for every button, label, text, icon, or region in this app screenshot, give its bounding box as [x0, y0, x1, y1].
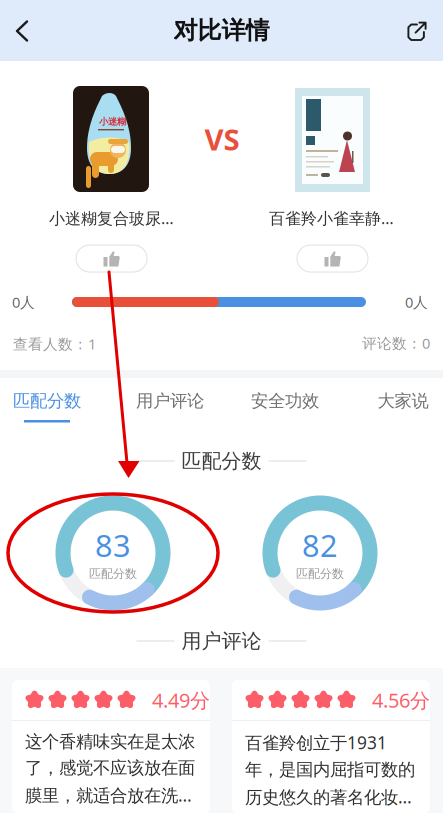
staticText: 4.49分 — [152, 687, 210, 713]
button[interactable]: 安全功效 — [229, 382, 341, 427]
staticText: 匹配分数 — [89, 566, 137, 581]
staticText: 匹配分数 — [181, 449, 261, 473]
staticText: 匹配分数 — [13, 390, 81, 412]
staticText: 0人 — [405, 292, 428, 312]
staticText: 83 — [95, 525, 131, 565]
button[interactable]: Share — [395, 9, 439, 53]
staticText: 小迷糊复合玻尿… — [49, 207, 174, 229]
staticText: 评论数：0 — [362, 333, 430, 353]
staticText: 查看人数：1 — [13, 334, 96, 353]
button[interactable]: Back — [0, 9, 44, 53]
button[interactable]: Like 小迷糊复合玻尿 — [76, 245, 147, 272]
button[interactable]: 4.49分 — [12, 680, 210, 813]
staticText: 4.56分 — [372, 687, 430, 713]
staticText: 用户评论 — [136, 390, 204, 412]
staticText: 大家说 — [377, 390, 428, 412]
button[interactable]: 匹配分数 — [0, 382, 94, 427]
button[interactable]: 大家说 — [353, 382, 443, 427]
staticText: 安全功效 — [251, 390, 319, 412]
button[interactable]: 4.56分 — [232, 680, 430, 813]
button[interactable]: Like 百雀羚小雀幸静 — [297, 245, 368, 272]
staticText: 匹配分数 — [296, 566, 344, 581]
staticText: 0人 — [12, 292, 35, 312]
staticText: 用户评论 — [181, 629, 261, 653]
staticText: 百雀羚小雀幸静… — [269, 207, 394, 229]
staticText: 小迷糊 — [99, 116, 126, 127]
staticText: 百雀羚创立于1931年，是国内屈指可数的历史悠久的著名化妆… — [245, 731, 415, 808]
button[interactable]: 用户评论 — [114, 382, 226, 427]
staticText: 82 — [302, 525, 338, 565]
staticText: VS — [204, 119, 239, 158]
staticText: 对比详情 — [173, 16, 269, 45]
staticText: 这个香精味实在是太浓了，感觉不应该放在面膜里，就适合放在洗… — [25, 731, 195, 807]
